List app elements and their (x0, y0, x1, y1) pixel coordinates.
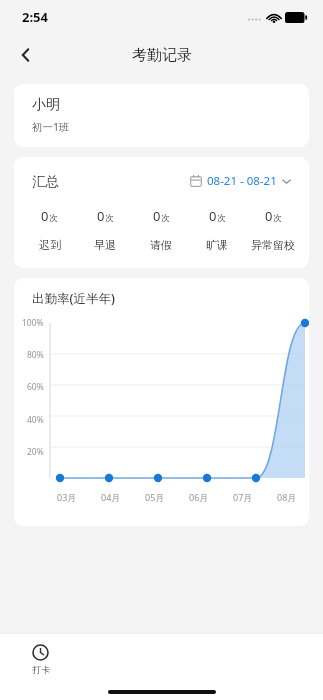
staticText: 08月 (277, 491, 297, 503)
staticText: 07月 (233, 491, 253, 503)
staticText: 小明 (32, 96, 60, 114)
staticText: 0 (209, 207, 217, 225)
staticText: 旷课 (206, 238, 228, 252)
staticText: 迟到 (39, 238, 61, 252)
staticText: 08-21 - 08-21 (207, 173, 277, 189)
staticText: 0 (153, 207, 161, 225)
staticText: 0 (97, 207, 105, 225)
button[interactable]: 08-21 - 08-21 (186, 169, 295, 193)
staticText: 20% (27, 446, 44, 458)
staticText: 06月 (189, 491, 209, 503)
staticText: 汇总 (32, 173, 59, 190)
staticText: 05月 (145, 491, 165, 503)
staticText: 初一1班 (32, 120, 70, 134)
staticText: 打卡 (32, 664, 50, 675)
staticText: 2:54 (22, 8, 48, 26)
button[interactable]: Back (8, 37, 44, 73)
staticText: 早退 (94, 238, 116, 252)
staticText: 次 (49, 213, 58, 224)
staticText: 04月 (101, 491, 121, 503)
button[interactable]: 0 (133, 207, 189, 252)
staticText: 次 (217, 213, 226, 224)
staticText: 40% (27, 414, 44, 426)
button[interactable]: 小明 (14, 84, 309, 147)
staticText: 100% (22, 317, 44, 329)
button[interactable]: 0 (77, 207, 133, 252)
staticText: 请假 (150, 238, 172, 252)
staticText: 考勤记录 (132, 46, 192, 65)
staticText: 60% (27, 381, 44, 393)
staticText: 次 (105, 213, 114, 224)
staticText: 出勤率(近半年) (32, 290, 115, 307)
staticText: 0 (41, 207, 49, 225)
button[interactable]: 0 (245, 207, 301, 252)
staticText: 80% (27, 349, 44, 361)
button[interactable]: 打卡 (0, 634, 81, 684)
staticText: 03月 (57, 491, 77, 503)
staticText: 次 (273, 213, 282, 224)
staticText: 0 (265, 207, 273, 225)
button[interactable]: 0 (22, 207, 77, 252)
staticText: 次 (161, 213, 170, 224)
staticText: 异常留校 (251, 238, 295, 252)
button[interactable]: 0 (189, 207, 245, 252)
